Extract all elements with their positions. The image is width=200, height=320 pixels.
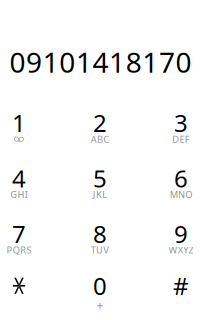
- staticText: #: [173, 269, 189, 302]
- button[interactable]: Pound: [149, 271, 200, 320]
- button[interactable]: 8 T U V: [68, 217, 132, 267]
- staticText: MNO: [170, 188, 192, 201]
- staticText: 5: [93, 162, 107, 195]
- button[interactable]: 6 M N O: [149, 161, 200, 211]
- staticText: 2: [93, 106, 107, 139]
- staticText: 1: [12, 106, 26, 139]
- button[interactable]: 0 Plus: [68, 271, 132, 320]
- button[interactable]: 4 G H I: [0, 161, 51, 211]
- staticText: JKL: [93, 188, 107, 201]
- staticText: WXYZ: [169, 243, 193, 256]
- button[interactable]: 3 D E F: [149, 106, 200, 156]
- staticText: PQRS: [7, 243, 31, 256]
- button[interactable]: 5 J K L: [68, 161, 132, 211]
- button[interactable]: 2 A B C: [68, 106, 132, 156]
- staticText: DEF: [172, 133, 190, 145]
- button[interactable]: Star: [0, 271, 51, 320]
- staticText: TUV: [91, 243, 109, 256]
- button[interactable]: 1 Voicemail: [0, 106, 51, 156]
- staticText: 3: [174, 106, 188, 139]
- staticText: 4: [12, 162, 26, 195]
- button[interactable]: 7 P Q R S: [0, 217, 51, 267]
- staticText: 8: [93, 217, 107, 250]
- staticText: 7: [12, 217, 26, 250]
- staticText: 09101418170: [9, 43, 191, 81]
- staticText: 6: [174, 162, 188, 195]
- staticText: GHI: [10, 188, 28, 201]
- button[interactable]: 9 W X Y Z: [149, 217, 200, 267]
- staticText: ABC: [91, 133, 109, 145]
- staticText: 0: [93, 269, 107, 302]
- staticText: 9: [174, 217, 188, 250]
- staticText: +: [96, 297, 103, 314]
